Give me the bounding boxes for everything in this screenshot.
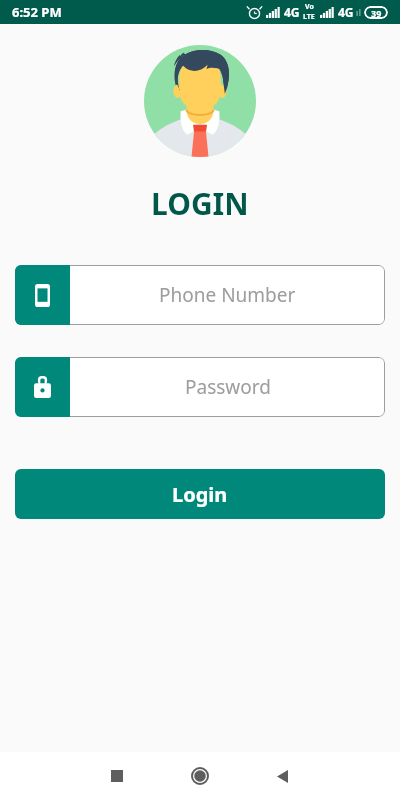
staticText: Login	[172, 481, 228, 508]
staticText: 39	[371, 7, 382, 19]
staticText: Password	[185, 374, 271, 400]
staticText: ıl	[356, 7, 361, 18]
button[interactable]: Login	[15, 469, 385, 519]
button[interactable]: Home	[159, 752, 241, 800]
staticText: Phone Number	[159, 282, 296, 308]
staticText: 6:52 PM	[12, 3, 62, 21]
staticText: LTE	[303, 12, 315, 22]
button[interactable]: Password	[15, 357, 385, 417]
button[interactable]: Back	[241, 752, 323, 800]
staticText: 4G	[284, 4, 300, 20]
staticText: Vo	[305, 2, 314, 12]
button[interactable]: Phone Number	[15, 265, 385, 325]
button[interactable]: Recent apps	[76, 752, 158, 800]
staticText: 4G	[338, 4, 354, 20]
staticText: LOGIN	[151, 183, 249, 224]
